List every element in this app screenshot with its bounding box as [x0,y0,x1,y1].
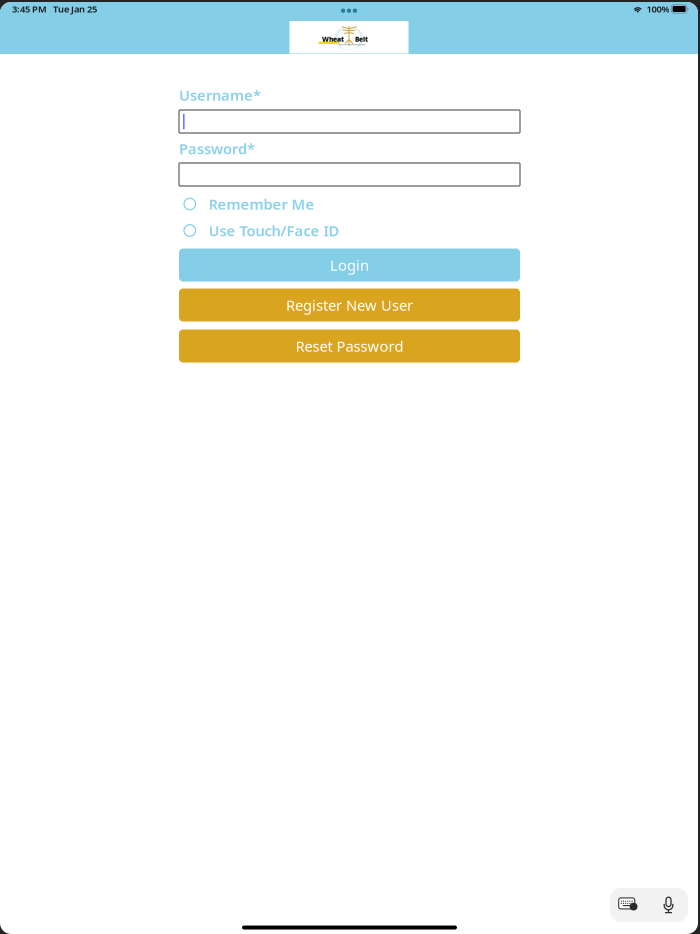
staticText: Login [330,255,369,275]
staticText: Tue Jan 25 [53,3,97,15]
button[interactable]: Remember Me [179,191,520,217]
staticText: Belt [355,35,368,44]
staticText: Register New User [286,295,413,315]
staticText: 100% [646,3,669,15]
button[interactable]: Login [179,248,520,281]
staticText: 3:45 PM [12,3,47,15]
button[interactable]: Use Touch/Face ID [179,217,520,243]
staticText: Remember Me [209,194,315,214]
button[interactable]: Username [179,110,520,133]
staticText: Username* [179,85,261,105]
button[interactable]: Show Keyboard [610,888,649,922]
staticText: Wheat [322,35,344,44]
staticText: Use Touch/Face ID [209,221,340,240]
staticText: Password* [179,139,255,158]
button[interactable]: Register New User [179,288,520,321]
button[interactable]: Dictate [649,888,688,922]
button[interactable]: Password [179,163,520,186]
staticText: Reset Password [295,336,403,356]
button[interactable]: Reset Password [179,329,520,362]
